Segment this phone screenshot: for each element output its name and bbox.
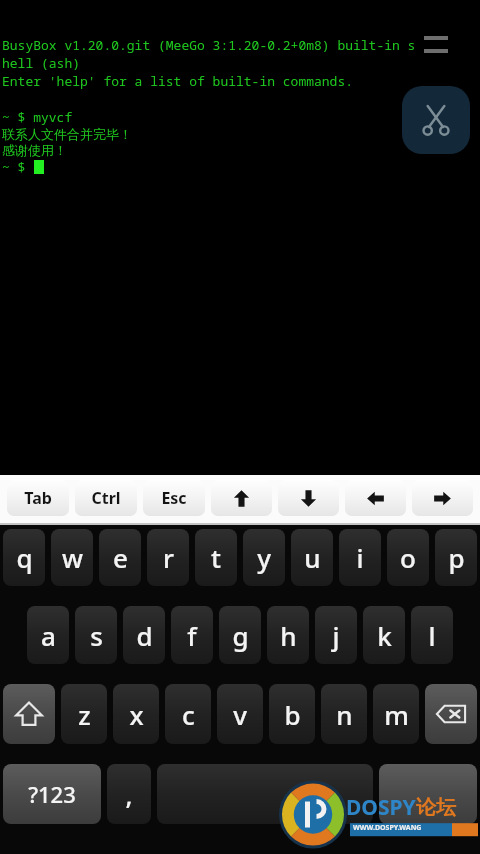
staticText: r [163, 540, 174, 575]
staticText: m [384, 697, 409, 732]
staticText: o [400, 540, 416, 575]
staticText: z [78, 697, 91, 732]
staticText: 论坛 [416, 795, 456, 820]
button[interactable]: t [195, 529, 237, 586]
staticText: hell (ash) [2, 54, 81, 72]
staticText: l [428, 618, 436, 653]
button[interactable]: c [165, 684, 211, 744]
staticText: f [187, 618, 197, 653]
button[interactable]: Down [278, 480, 339, 516]
button[interactable]: Right [412, 480, 473, 516]
staticText: i [356, 540, 364, 575]
button[interactable]: d [123, 606, 165, 664]
button[interactable]: q [3, 529, 45, 586]
button[interactable]: Space [157, 764, 373, 824]
staticText: t [211, 540, 221, 575]
staticText: k [377, 618, 392, 653]
staticText: DOSPY [346, 793, 416, 822]
button[interactable]: i [339, 529, 381, 586]
button[interactable]: l [411, 606, 453, 664]
button[interactable]: e [99, 529, 141, 586]
button[interactable]: k [363, 606, 405, 664]
staticText: 联系人文件合并完毕！ [2, 126, 132, 142]
staticText: q [16, 540, 33, 575]
staticText: w [62, 540, 83, 575]
button[interactable]: g [219, 606, 261, 664]
button[interactable]: u [291, 529, 333, 586]
staticText: 感谢使用！ [2, 142, 67, 158]
staticText: Ctrl [91, 487, 121, 509]
staticText: Tab [24, 487, 52, 509]
staticText: WWW.DOSPY.WANG [353, 823, 422, 833]
button[interactable]: b [269, 684, 315, 744]
button[interactable]: z [61, 684, 107, 744]
staticText: s [90, 618, 103, 653]
button[interactable]: Up [211, 480, 272, 516]
button[interactable]: Left [345, 480, 406, 516]
button[interactable]: Menu [424, 36, 448, 53]
staticText: BusyBox v1.20.0.git (MeeGo 3:1.20-0.2+0m… [2, 36, 416, 54]
staticText: u [304, 540, 321, 575]
button[interactable]: Esc [143, 480, 205, 516]
button[interactable]: a [27, 606, 69, 664]
staticText: ?123 [28, 779, 76, 809]
button[interactable]: v [217, 684, 263, 744]
button[interactable]: h [267, 606, 309, 664]
staticText: , [125, 777, 133, 812]
staticText: b [284, 697, 301, 732]
button[interactable]: ?123 [3, 764, 101, 824]
staticText: n [336, 697, 353, 732]
button[interactable]: Enter [379, 764, 477, 824]
staticText: ~ $ [2, 158, 34, 176]
staticText: Esc [161, 487, 187, 509]
staticText: g [232, 618, 249, 653]
staticText: v [233, 697, 247, 732]
staticText: d [136, 618, 153, 653]
button[interactable]: s [75, 606, 117, 664]
button[interactable]: w [51, 529, 93, 586]
staticText: h [280, 618, 297, 653]
button[interactable]: Backspace [425, 684, 477, 744]
button[interactable]: o [387, 529, 429, 586]
button[interactable]: f [171, 606, 213, 664]
staticText: y [257, 540, 271, 575]
staticText: ~ $ myvcf [2, 108, 73, 126]
button[interactable]: y [243, 529, 285, 586]
button[interactable]: r [147, 529, 189, 586]
button[interactable]: Select text [402, 86, 470, 154]
staticText: Enter 'help' for a list of built-in comm… [2, 72, 353, 90]
staticText: x [129, 697, 144, 732]
staticText: j [332, 618, 340, 653]
button[interactable]: p [435, 529, 477, 586]
button[interactable]: , [107, 764, 151, 824]
button[interactable]: x [113, 684, 159, 744]
button[interactable]: j [315, 606, 357, 664]
button[interactable]: Tab [7, 480, 69, 516]
button[interactable]: n [321, 684, 367, 744]
staticText: a [41, 618, 56, 653]
button[interactable]: Ctrl [75, 480, 137, 516]
button[interactable]: Shift [3, 684, 55, 744]
staticText: c [182, 697, 195, 732]
staticText: e [113, 540, 128, 575]
button[interactable]: m [373, 684, 419, 744]
staticText: p [448, 540, 465, 575]
